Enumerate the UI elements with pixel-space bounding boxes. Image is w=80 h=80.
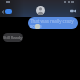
button[interactable]: Still Ready [3,33,23,42]
button[interactable]: That was really crazy [28,17,78,29]
button[interactable]: Back [0,9,5,14]
staticText: That was really crazy [30,18,74,24]
button[interactable]: Contact avatar [36,6,45,15]
staticText: Still Ready [3,35,23,40]
button[interactable]: Video call [69,7,77,15]
staticText: some [30,23,42,29]
button[interactable]: Unread messages [5,9,12,14]
